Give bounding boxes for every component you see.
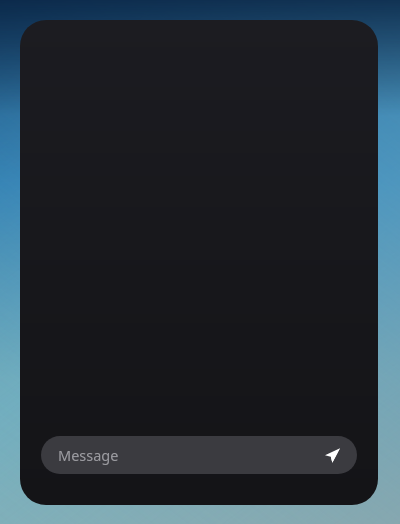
button[interactable]: Message <box>41 436 357 474</box>
staticText: Message <box>58 445 319 465</box>
button[interactable]: Send <box>319 442 345 468</box>
